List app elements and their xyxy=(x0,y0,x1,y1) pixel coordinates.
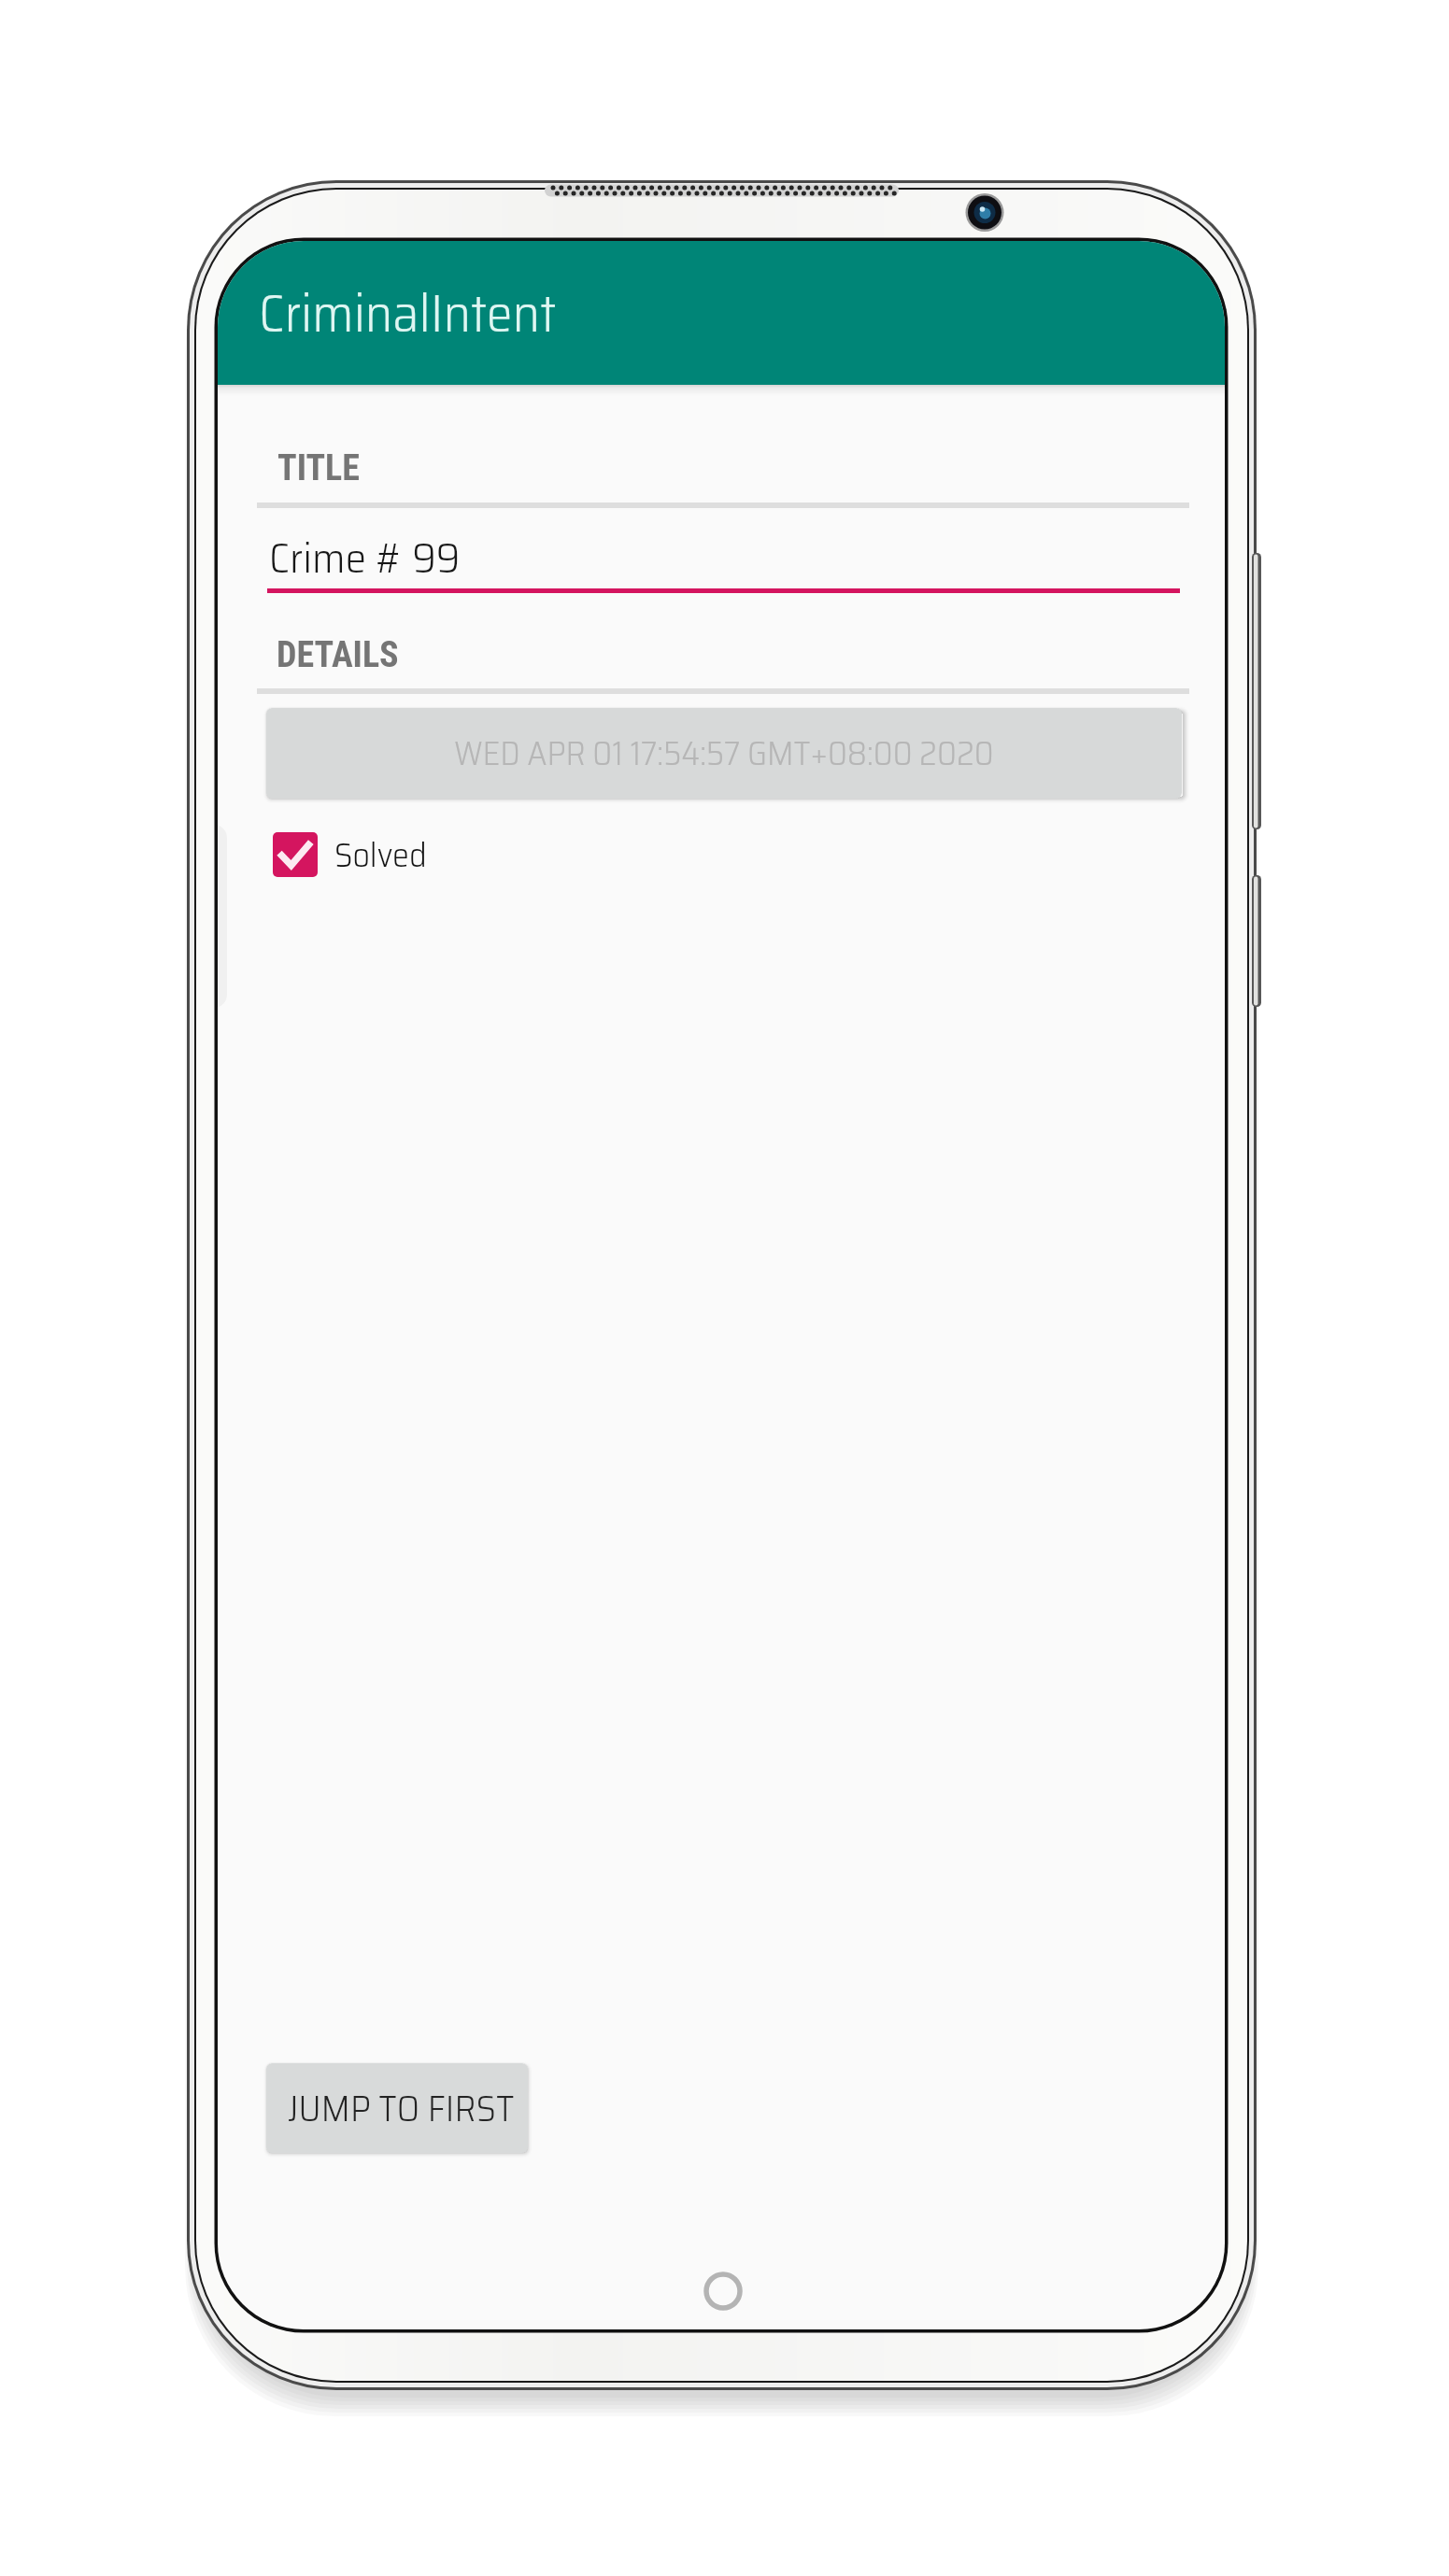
staticText: CriminalIntent xyxy=(259,272,557,354)
button[interactable]: Solved xyxy=(262,818,427,891)
staticText: DETAILS xyxy=(277,634,399,676)
button[interactable]: CriminalIntent xyxy=(218,241,1225,385)
staticText: Solved xyxy=(334,828,427,882)
staticText: TITLE xyxy=(277,447,360,489)
staticText: WED APR 01 17:54:57 GMT+08:00 2020 xyxy=(454,727,994,780)
button[interactable]: WED APR 01 17:54:57 GMT+08:00 2020 xyxy=(266,708,1182,799)
button[interactable]: JUMP TO FIRST xyxy=(266,2063,528,2153)
staticText: JUMP TO FIRST xyxy=(288,2080,515,2137)
staticText: Crime # 99 xyxy=(269,525,461,591)
button[interactable]: Home xyxy=(686,2254,760,2328)
